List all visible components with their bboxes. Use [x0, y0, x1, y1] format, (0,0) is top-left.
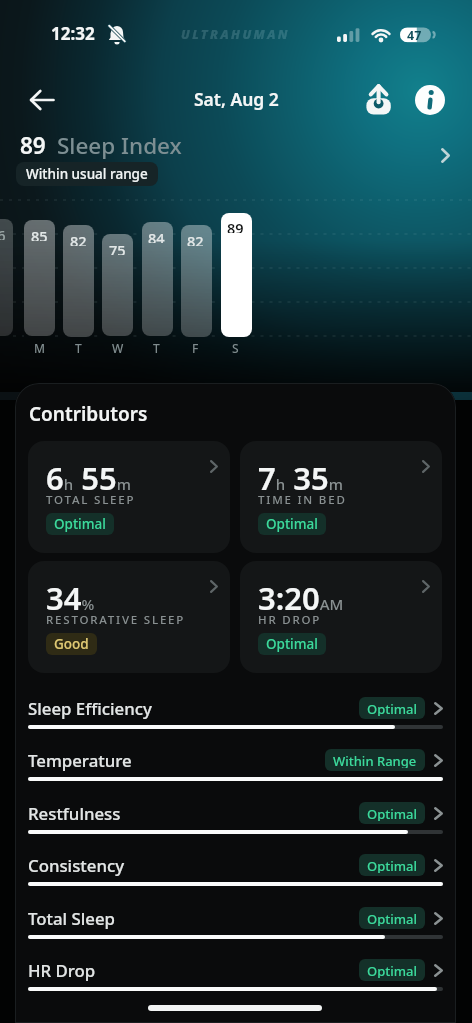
staticText: T [153, 340, 160, 354]
staticText: Optimal [266, 515, 318, 533]
staticText: 3:20AM [258, 577, 344, 611]
staticText: Optimal [54, 515, 106, 533]
staticText: Contributors [29, 401, 148, 425]
staticText: W [112, 340, 124, 354]
staticText: T [75, 340, 82, 354]
staticText: Optimal [367, 910, 417, 926]
staticText: F [192, 340, 199, 354]
staticText: HR Drop [28, 959, 96, 981]
staticText: Temperature [28, 749, 132, 771]
staticText: Within Range [333, 752, 417, 768]
staticText: 89 [227, 218, 244, 233]
staticText: 89 Sleep Index [20, 130, 182, 160]
staticText: Consistency [28, 854, 125, 876]
staticText: Optimal [266, 635, 318, 653]
button[interactable] [0, 958, 472, 994]
staticText: 12:32 [51, 22, 95, 45]
button[interactable] [0, 128, 472, 190]
staticText: 34% [46, 577, 95, 611]
button[interactable]: 7h 35m [240, 441, 442, 553]
staticText: 82 [70, 231, 87, 246]
staticText: Optimal [367, 700, 417, 716]
staticText: Within usual range [26, 165, 148, 183]
staticText: Optimal [367, 857, 417, 873]
staticText: 84 [148, 228, 165, 243]
button[interactable]: 34% [28, 561, 230, 673]
staticText: TIME IN BED [258, 492, 347, 508]
button[interactable] [0, 801, 472, 837]
staticText: Sat, Aug 2 [194, 87, 279, 111]
button[interactable] [0, 906, 472, 942]
staticText: 82 [187, 231, 204, 246]
button[interactable]: 3:20AM [240, 561, 442, 673]
staticText: 47 [407, 27, 422, 43]
button[interactable] [0, 696, 472, 732]
button[interactable] [358, 78, 398, 120]
button[interactable] [0, 748, 472, 784]
staticText: Optimal [367, 805, 417, 821]
staticText: HR DROP [258, 612, 322, 628]
staticText: ULTRAHUMAN [181, 26, 291, 43]
button[interactable] [0, 853, 472, 889]
button[interactable]: 6h 55m [28, 441, 230, 553]
staticText: Optimal [367, 962, 417, 978]
staticText: TOTAL SLEEP [46, 492, 136, 508]
staticText: 6h 55m [46, 457, 131, 491]
staticText: Total Sleep [28, 907, 115, 929]
staticText: M [34, 340, 46, 354]
staticText: Sleep Efficiency [28, 697, 152, 719]
staticText: RESTORATIVE SLEEP [46, 612, 186, 628]
staticText: 85 [31, 226, 48, 241]
staticText: Restfulness [28, 802, 121, 824]
button[interactable] [24, 83, 60, 117]
staticText: 75 [109, 240, 126, 255]
button[interactable] [412, 82, 448, 118]
staticText: 86 [0, 225, 6, 240]
staticText: Good [54, 635, 89, 653]
staticText: S [232, 340, 239, 354]
staticText: 7h 35m [258, 457, 343, 491]
